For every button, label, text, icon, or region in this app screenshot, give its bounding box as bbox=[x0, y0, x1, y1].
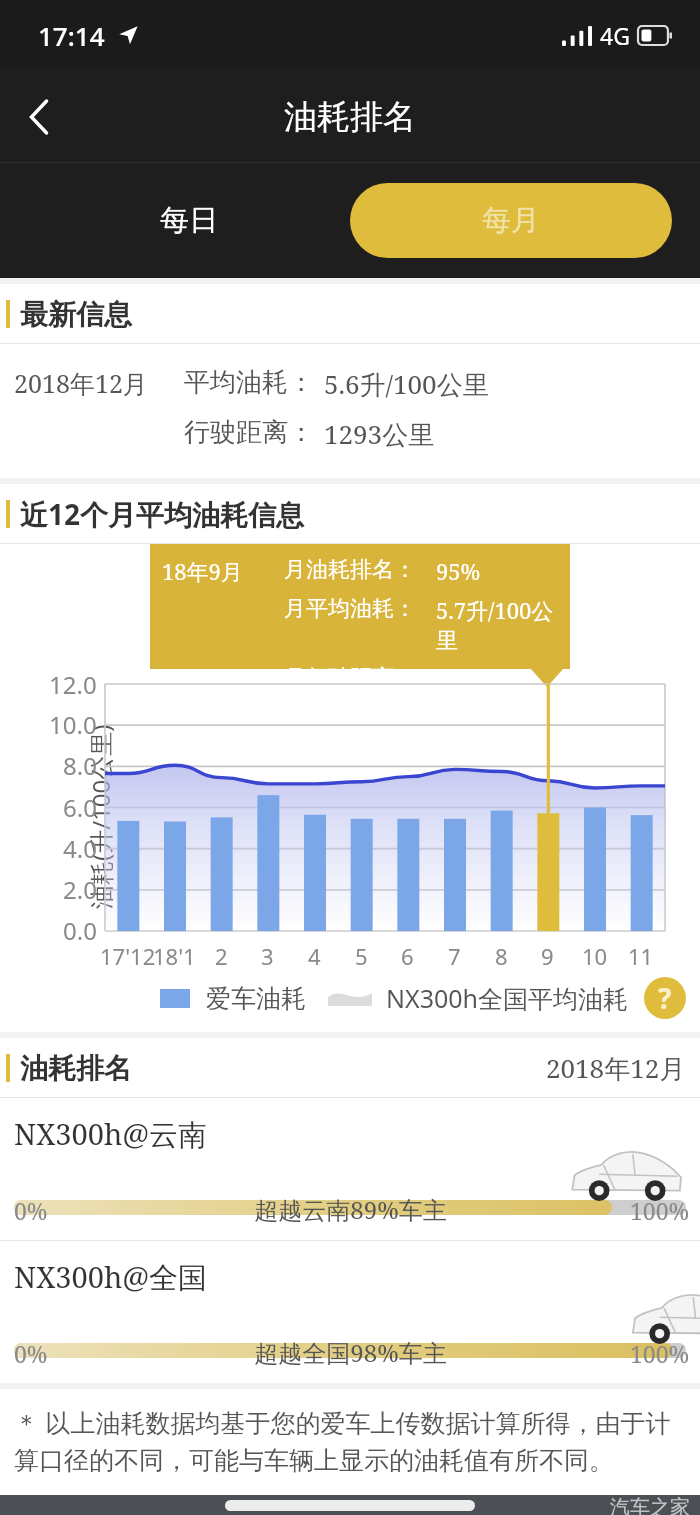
staticText: 7 bbox=[448, 941, 461, 971]
staticText: 10 bbox=[582, 941, 608, 971]
staticText: 汽车之家 bbox=[610, 1495, 690, 1515]
staticText: 油耗排名 bbox=[20, 1051, 132, 1086]
staticText: ＊ 以上油耗数据均基于您的爱车上传数据计算所得，由于计算口径的不同，可能与车辆上… bbox=[14, 1405, 686, 1477]
button[interactable]: 每月 bbox=[350, 183, 672, 258]
staticText: 0% bbox=[14, 1195, 48, 1226]
staticText: 8.0 bbox=[63, 749, 97, 782]
staticText: NX300h全国平均油耗 bbox=[386, 981, 629, 1015]
staticText: 2018年12月 bbox=[14, 366, 184, 400]
staticText: 9 bbox=[541, 941, 554, 971]
staticText: 100% bbox=[630, 1338, 690, 1369]
staticText: 6.0 bbox=[63, 791, 97, 824]
staticText: 0.0 bbox=[63, 914, 97, 947]
staticText: 10.0 bbox=[49, 708, 97, 741]
staticText: 月行驶距离： bbox=[284, 664, 436, 669]
staticText: 4.0 bbox=[63, 832, 97, 865]
staticText: 17:14 bbox=[38, 18, 105, 53]
staticText: 油耗(升/100公里) bbox=[84, 724, 117, 909]
staticText: 8 bbox=[495, 941, 508, 971]
staticText: NX300h@云南 bbox=[14, 1114, 208, 1154]
staticText: 4G bbox=[600, 20, 630, 51]
staticText: 100% bbox=[630, 1195, 690, 1226]
staticText: 超越云南89%车主 bbox=[254, 1193, 447, 1226]
staticText: 2018年12月 bbox=[546, 1050, 686, 1086]
staticText: 最新信息 bbox=[20, 297, 132, 332]
staticText: 5.6升/100公里 bbox=[324, 366, 489, 402]
staticText: 月平均油耗： bbox=[284, 595, 436, 623]
staticText: 油耗排名 bbox=[284, 96, 416, 138]
staticText: 18年9月 bbox=[162, 556, 284, 586]
staticText: 95% bbox=[436, 556, 481, 586]
staticText: 平均油耗： bbox=[184, 366, 324, 399]
staticText: 爱车油耗 bbox=[206, 983, 306, 1014]
staticText: 17'12 bbox=[100, 941, 156, 971]
staticText: 6 bbox=[401, 941, 414, 971]
staticText: 5 bbox=[355, 941, 368, 971]
staticText: 0% bbox=[14, 1338, 48, 1369]
staticText: ? bbox=[658, 979, 672, 1017]
staticText: 每日 bbox=[160, 202, 218, 239]
staticText: 2 bbox=[215, 941, 228, 971]
staticText: 每月 bbox=[482, 202, 540, 239]
button[interactable]: 帮助 bbox=[644, 977, 686, 1019]
staticText: NX300h@全国 bbox=[14, 1257, 208, 1297]
staticText: 2.0 bbox=[63, 873, 97, 906]
button[interactable]: 返回 bbox=[0, 78, 78, 156]
button[interactable]: 每日 bbox=[28, 183, 350, 258]
staticText: 11 bbox=[628, 941, 654, 971]
staticText: 近12个月平均油耗信息 bbox=[20, 495, 305, 533]
staticText: 12.0 bbox=[49, 668, 97, 701]
staticText: 超越全国98%车主 bbox=[254, 1336, 447, 1369]
staticText: 4 bbox=[308, 941, 321, 971]
staticText: 3 bbox=[261, 941, 274, 971]
staticText: 5.7升/100公里 bbox=[436, 595, 570, 655]
staticText: 月油耗排名： bbox=[284, 556, 436, 584]
staticText: 18'1 bbox=[153, 941, 196, 971]
staticText: 1293公里 bbox=[324, 416, 435, 452]
staticText: 行驶距离： bbox=[184, 416, 324, 449]
